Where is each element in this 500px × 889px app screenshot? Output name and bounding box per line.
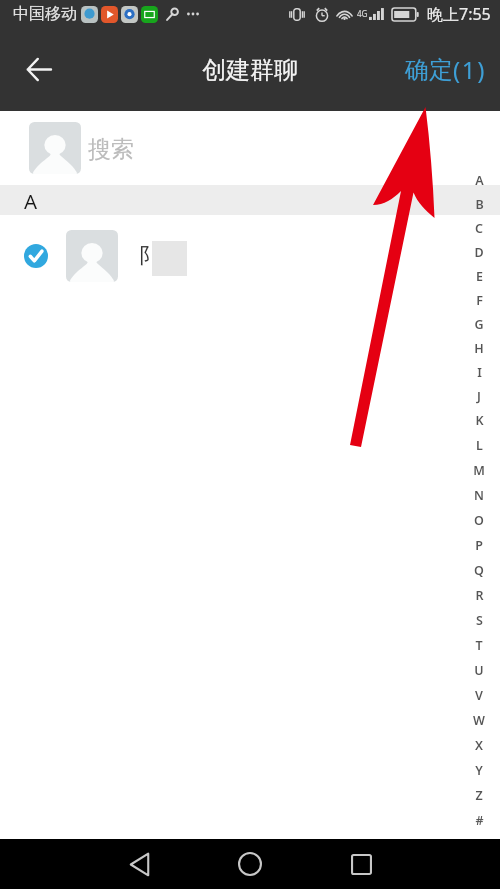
staticText: P — [475, 537, 483, 554]
staticText: U — [474, 662, 484, 679]
button[interactable]: Z — [458, 783, 500, 808]
button[interactable]: Y — [458, 758, 500, 783]
staticText: R — [475, 587, 484, 604]
button[interactable]: Home — [222, 839, 278, 889]
button[interactable]: U — [458, 658, 500, 683]
staticText: A — [475, 172, 484, 189]
staticText: 搜索 — [88, 135, 134, 164]
staticText: F — [476, 292, 483, 309]
staticText: 创建群聊 — [202, 55, 298, 85]
staticText: A — [24, 187, 38, 215]
button[interactable]: A — [458, 168, 500, 192]
staticText: S — [476, 612, 483, 629]
staticText: L — [476, 437, 483, 454]
staticText: (1) — [453, 53, 486, 86]
staticText: X — [475, 737, 483, 754]
staticText: 中国移动 — [13, 4, 77, 24]
staticText: Y — [475, 762, 483, 779]
button[interactable]: Recents — [333, 839, 389, 889]
button[interactable]: G — [458, 312, 500, 336]
button[interactable]: # — [458, 808, 500, 833]
staticText: N — [474, 487, 484, 504]
button[interactable]: 搜索 — [0, 111, 500, 185]
staticText: 4G — [357, 8, 368, 19]
staticText: V — [475, 687, 483, 704]
button[interactable]: C — [458, 216, 500, 240]
button[interactable]: Back — [12, 43, 65, 96]
staticText: T — [475, 637, 483, 654]
button[interactable]: F — [458, 288, 500, 312]
button[interactable]: 阝 — [0, 215, 500, 296]
staticText: E — [476, 268, 483, 285]
button[interactable]: I — [458, 360, 500, 384]
button[interactable]: P — [458, 533, 500, 558]
button[interactable]: E — [458, 264, 500, 288]
button[interactable]: 确定 — [391, 44, 500, 95]
staticText: D — [474, 244, 484, 261]
staticText: Q — [474, 562, 484, 579]
button[interactable]: B — [458, 192, 500, 216]
button[interactable]: Back — [111, 839, 167, 889]
button[interactable]: K — [458, 408, 500, 433]
button[interactable]: V — [458, 683, 500, 708]
staticText: Z — [475, 787, 483, 804]
staticText: 阝 — [139, 243, 160, 269]
button[interactable]: O — [458, 508, 500, 533]
staticText: H — [474, 340, 484, 357]
button[interactable]: L — [458, 433, 500, 458]
button[interactable]: W — [458, 708, 500, 733]
staticText: 晚上7:55 — [427, 3, 491, 25]
button[interactable]: N — [458, 483, 500, 508]
button[interactable]: Q — [458, 558, 500, 583]
button[interactable]: T — [458, 633, 500, 658]
button[interactable]: H — [458, 336, 500, 360]
staticText: B — [475, 196, 484, 213]
button[interactable]: M — [458, 458, 500, 483]
staticText: 确定 — [405, 55, 453, 85]
button[interactable]: X — [458, 733, 500, 758]
staticText: I — [477, 364, 482, 381]
staticText: J — [477, 388, 481, 405]
staticText: C — [475, 220, 483, 237]
staticText: G — [474, 316, 484, 333]
staticText: K — [475, 412, 484, 429]
staticText: # — [475, 812, 484, 829]
button[interactable]: R — [458, 583, 500, 608]
button[interactable]: J — [458, 384, 500, 408]
staticText: W — [473, 712, 485, 729]
staticText: O — [474, 512, 484, 529]
staticText: M — [473, 462, 485, 479]
button[interactable]: S — [458, 608, 500, 633]
button[interactable]: D — [458, 240, 500, 264]
